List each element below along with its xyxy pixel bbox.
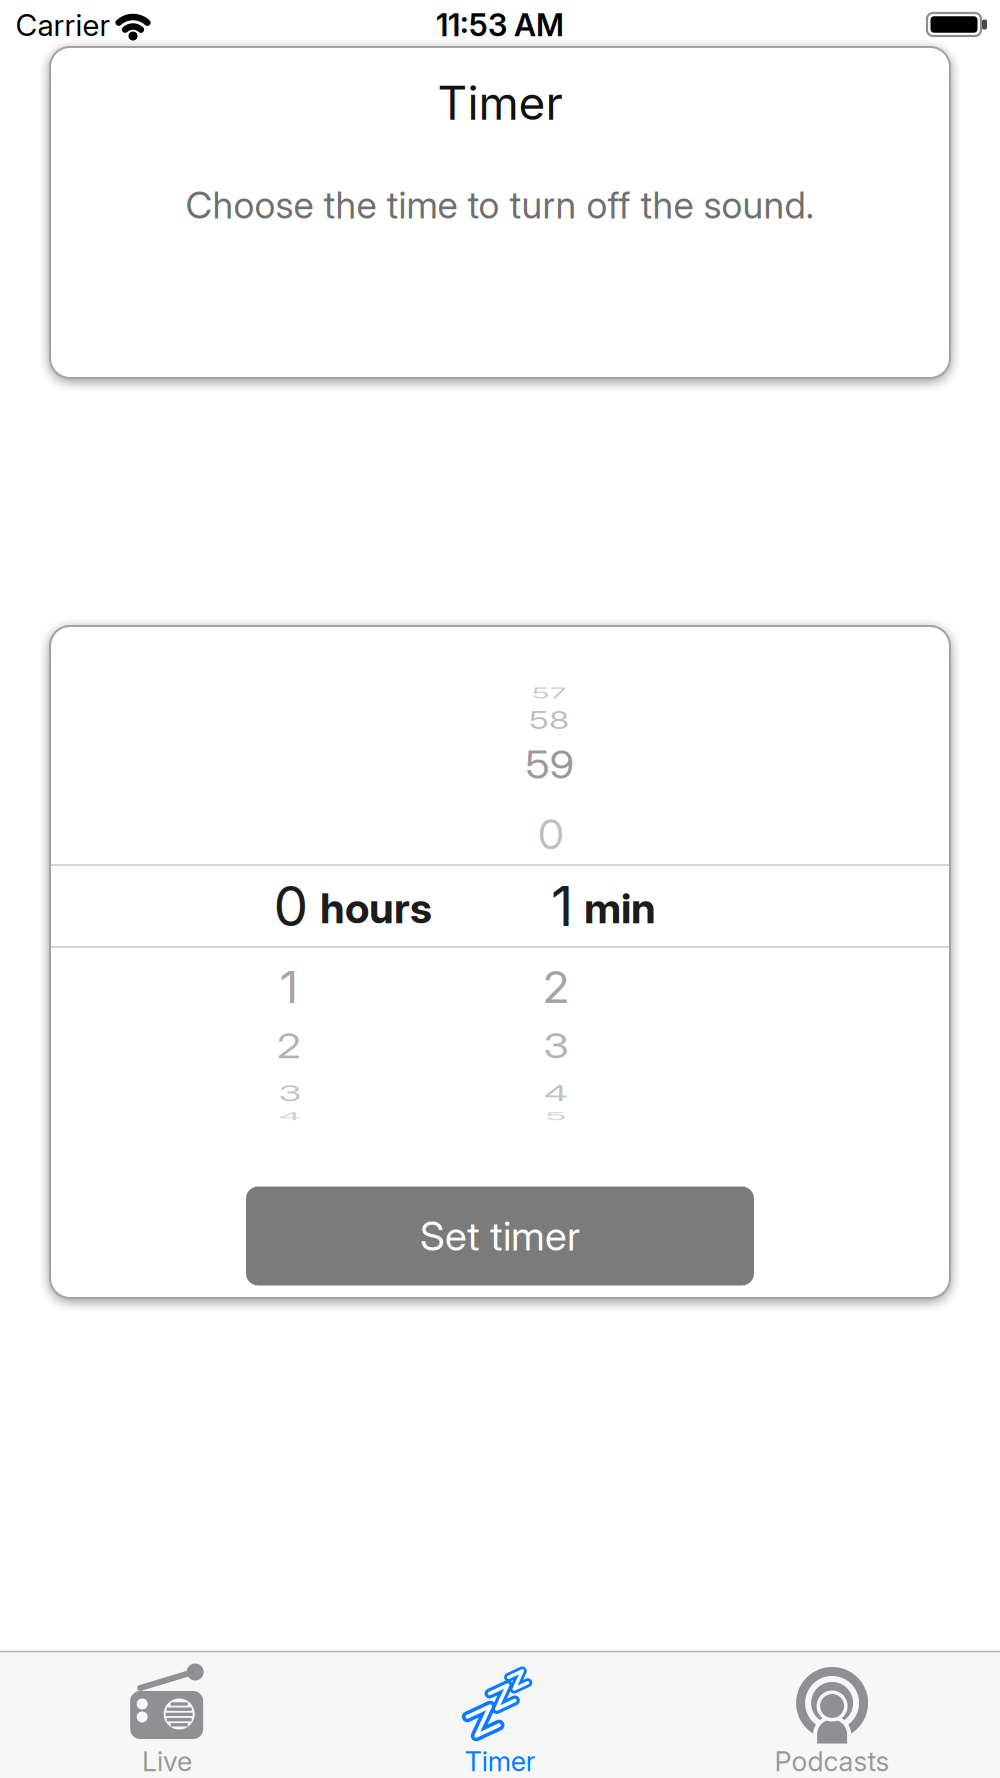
staticText: 1 [551, 873, 573, 939]
staticText: Timer [437, 75, 562, 131]
staticText: Live [142, 1745, 192, 1778]
staticText: Carrier [15, 7, 110, 43]
staticText: 2 [277, 1021, 301, 1071]
staticText: 3 [278, 1070, 301, 1116]
staticText: Podcasts [775, 1745, 890, 1778]
staticText: 5 [545, 1094, 566, 1138]
staticText: 59 [525, 740, 574, 790]
staticText: 4 [278, 1094, 301, 1138]
staticText: Set timer [420, 1212, 580, 1260]
button[interactable]: Timer [333, 1651, 666, 1778]
staticText: 4 [544, 1070, 568, 1116]
staticText: 2 [542, 959, 570, 1015]
staticText: 1 [279, 959, 298, 1015]
staticText: 11:53 AM [436, 6, 564, 44]
staticText: 0 [273, 873, 308, 939]
staticText: 3 [543, 1021, 568, 1071]
staticText: 58 [529, 699, 569, 740]
staticText: Timer [465, 1745, 536, 1778]
button[interactable]: Podcasts [667, 1651, 1000, 1778]
button[interactable]: Set timer [246, 1186, 754, 1285]
button[interactable]: Live [0, 1651, 333, 1778]
staticText: 0 [538, 809, 564, 859]
staticText: hours [320, 883, 432, 933]
staticText: Choose the time to turn off the sound. [185, 183, 814, 227]
staticText: 57 [532, 675, 566, 711]
staticText: min [584, 883, 656, 933]
